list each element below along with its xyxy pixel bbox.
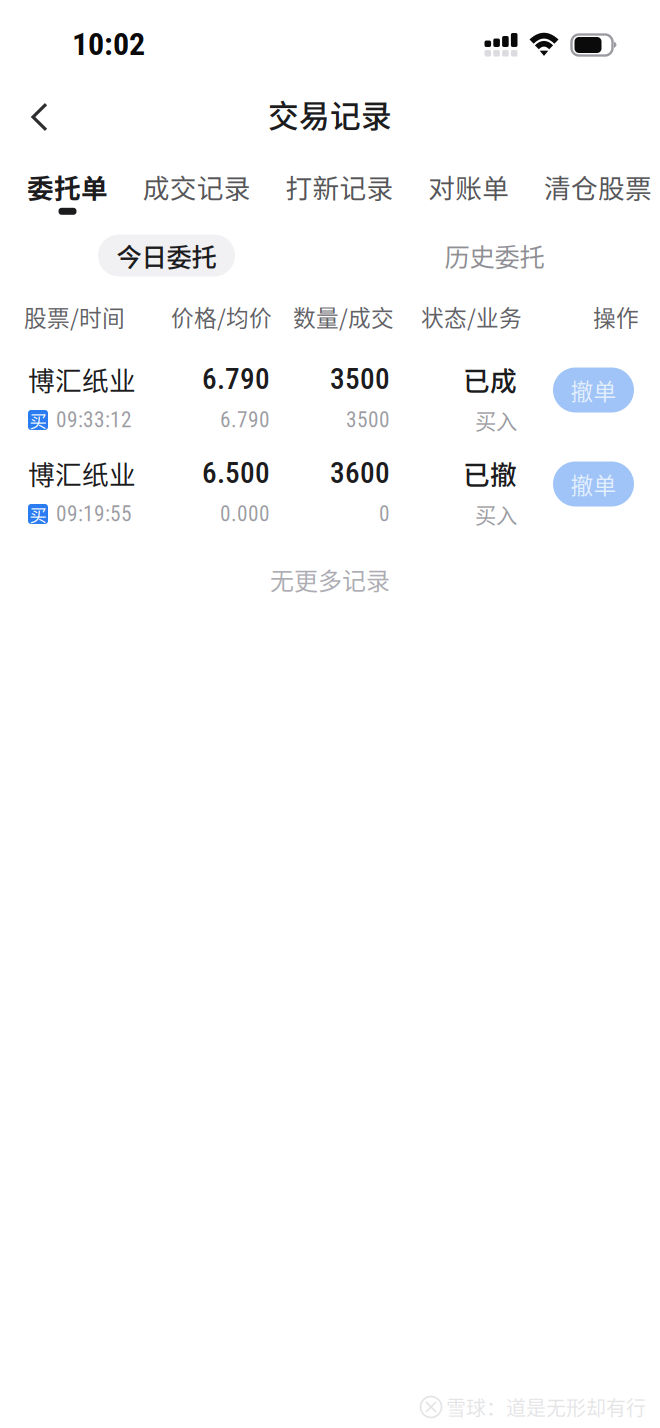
staticText: 博汇纸业 [28,360,136,398]
button[interactable]: 撤单 [553,461,634,506]
staticText: 成交记录 [143,167,251,206]
staticText: 买 [29,407,46,433]
staticText: 雪球：道是无形却有行 [446,1392,646,1421]
staticText: 09:33:12 [56,407,132,432]
staticText: 对账单 [428,167,509,206]
staticText: 交易记录 [268,92,392,136]
button[interactable]: 历史委托 [426,234,563,276]
staticText: 0 [379,501,390,526]
staticText: 撤单 [570,374,616,406]
staticText: 撤单 [570,468,616,500]
staticText: 6.790 [220,407,270,432]
staticText: 状态/业务 [421,300,522,333]
staticText: 已成 [463,360,517,398]
staticText: 09:19:55 [56,501,132,526]
staticText: 6.500 [202,456,270,490]
staticText: 价格/均价 [171,300,272,333]
staticText: 10:02 [72,25,145,63]
staticText: 历史委托 [444,237,544,274]
button[interactable]: 委托单 [27,147,108,227]
staticText: 买入 [475,499,517,529]
staticText: 3600 [330,456,390,490]
button[interactable]: 清仓股票 [544,147,652,227]
staticText: 数量/成交 [293,300,394,333]
staticText: 打新记录 [285,167,393,206]
button[interactable]: 今日委托 [98,234,235,276]
staticText: 3500 [330,362,390,396]
staticText: 买入 [475,405,517,435]
button[interactable]: 对账单 [428,147,509,227]
staticText: 6.790 [202,362,270,396]
staticText: 操作 [593,300,639,333]
staticText: 股票/时间 [24,300,125,333]
staticText: 委托单 [27,167,108,206]
button[interactable]: 打新记录 [285,147,393,227]
staticText: 今日委托 [116,237,216,274]
staticText: 买 [29,501,46,527]
staticText: 无更多记录 [270,562,390,597]
button[interactable]: Back [0,87,68,146]
staticText: 博汇纸业 [28,454,136,492]
staticText: 已撤 [463,454,517,492]
staticText: 3500 [346,407,390,432]
staticText: 清仓股票 [544,167,652,206]
staticText: 0.000 [220,501,270,526]
button[interactable]: 撤单 [553,367,634,412]
button[interactable]: 成交记录 [143,147,251,227]
